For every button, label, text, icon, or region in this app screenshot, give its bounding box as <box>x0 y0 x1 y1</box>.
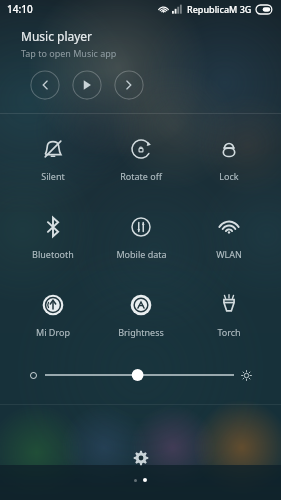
staticText: Tap to open Music app <box>21 47 117 59</box>
staticText: Rotate off <box>120 170 162 182</box>
staticText: Music player <box>21 28 93 44</box>
staticText: Mi Drop <box>36 326 70 338</box>
button[interactable]: Brightness <box>97 288 185 340</box>
button[interactable]: Settings <box>127 444 155 472</box>
staticText: Torch <box>217 326 241 338</box>
button[interactable]: Lock <box>185 132 273 184</box>
button[interactable] <box>0 362 281 388</box>
button[interactable]: Music player <box>0 26 281 61</box>
button[interactable]: Next <box>114 70 144 100</box>
button[interactable]: Torch <box>185 288 273 340</box>
staticText: Bluetooth <box>32 248 74 260</box>
staticText: Silent <box>41 170 65 182</box>
button[interactable]: Play <box>72 70 102 100</box>
button[interactable]: Silent <box>8 132 97 184</box>
staticText: RepublicaM 3G <box>187 3 252 15</box>
staticText: Brightness <box>118 326 164 338</box>
button[interactable]: Mi Drop <box>8 288 97 340</box>
button[interactable]: Rotate off <box>97 132 185 184</box>
button[interactable]: WLAN <box>185 210 273 262</box>
staticText: WLAN <box>216 248 242 260</box>
staticText: Mobile data <box>116 248 167 260</box>
button[interactable]: Bluetooth <box>8 210 97 262</box>
staticText: 14:10 <box>7 2 33 16</box>
button[interactable]: Previous <box>30 70 60 100</box>
button[interactable]: Mobile data <box>97 210 185 262</box>
staticText: Lock <box>219 170 239 182</box>
